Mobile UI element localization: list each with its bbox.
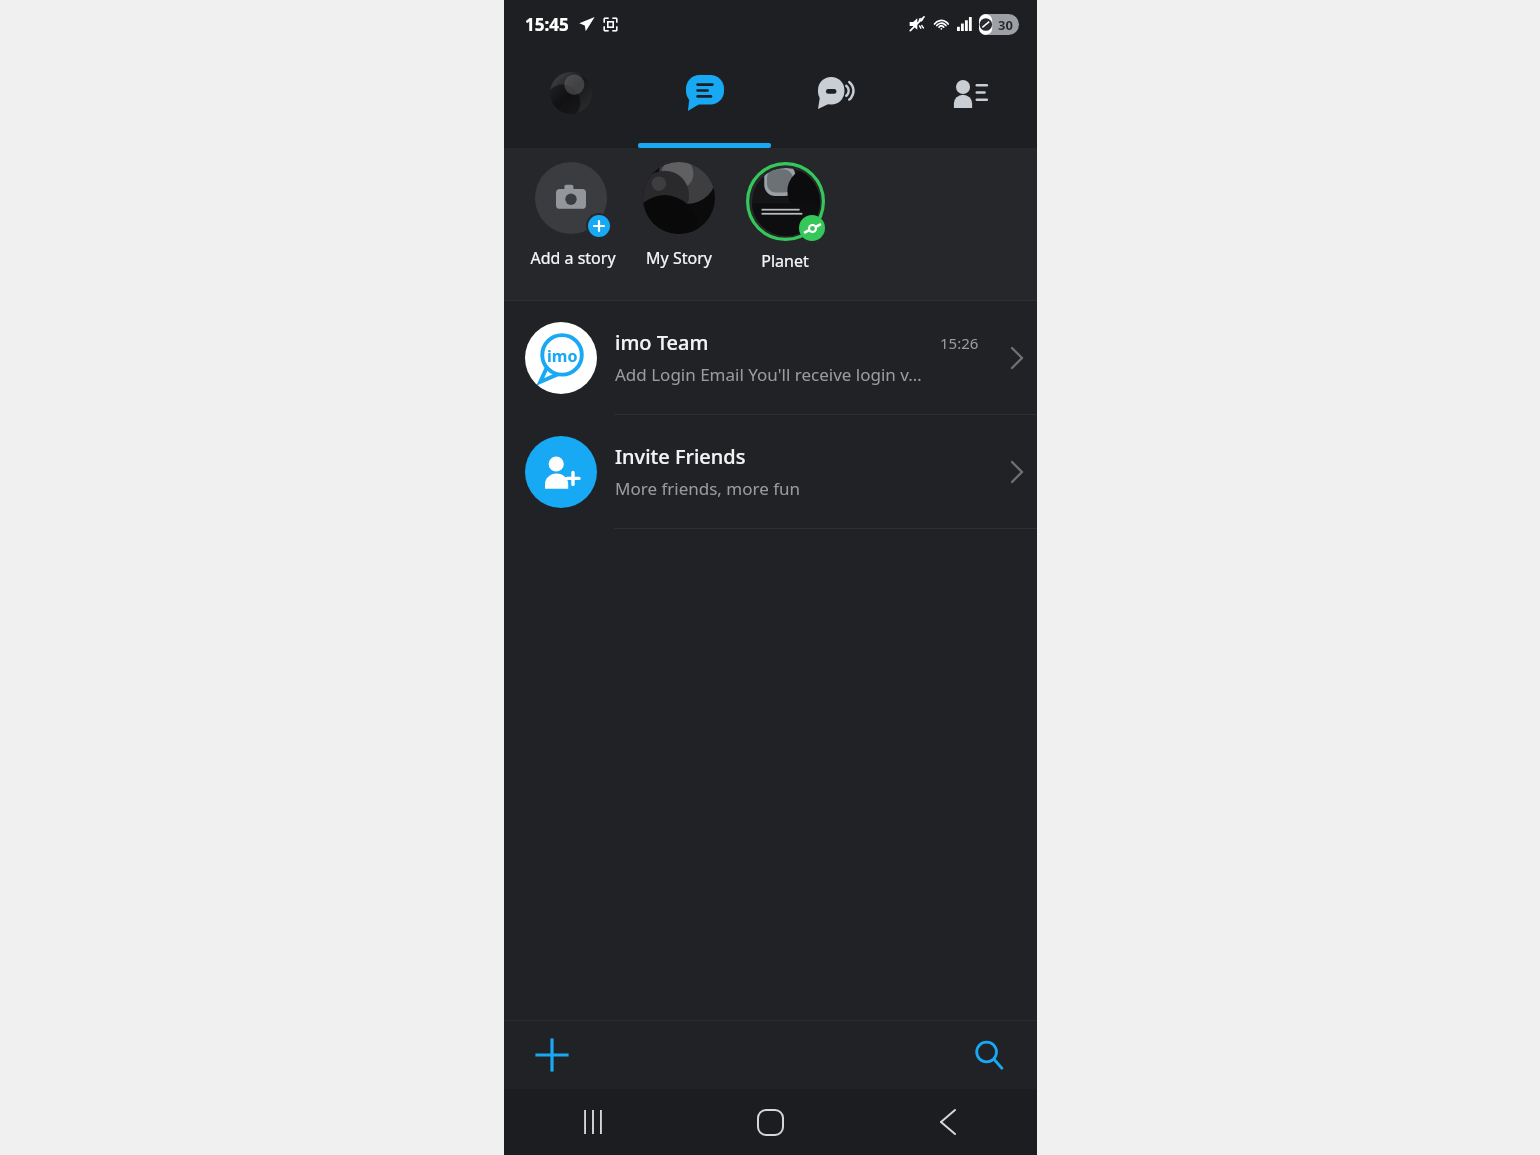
staticText: More friends, more fun — [615, 477, 801, 500]
staticText: My Story — [646, 247, 712, 269]
button[interactable]: Add a story — [520, 162, 626, 269]
staticText: 15:26 — [940, 333, 979, 353]
button[interactable]: Voice rooms — [771, 48, 904, 148]
button[interactable]: Home — [681, 1089, 859, 1155]
button[interactable]: Planet — [732, 162, 838, 272]
staticText: 15:45 — [525, 13, 569, 36]
staticText: Invite Friends — [615, 443, 746, 470]
staticText: 30 — [998, 16, 1013, 34]
button[interactable]: Recents — [504, 1089, 681, 1155]
staticText: Planet — [761, 250, 809, 272]
staticText: imo — [547, 345, 578, 367]
button[interactable]: Contacts — [904, 48, 1037, 148]
button[interactable]: New chat — [526, 1029, 578, 1081]
button[interactable]: Back — [859, 1089, 1037, 1155]
button[interactable]: Chats — [638, 48, 771, 148]
button[interactable]: Profile — [504, 48, 638, 148]
staticText: imo Team — [615, 329, 709, 356]
button[interactable]: imo — [504, 301, 1037, 414]
button[interactable]: Search — [963, 1029, 1015, 1081]
staticText: Add Login Email You'll receive login v… — [615, 363, 922, 386]
button[interactable]: Invite Friends — [504, 415, 1037, 528]
staticText: Add a story — [530, 247, 616, 269]
button[interactable]: My Story — [626, 162, 732, 269]
